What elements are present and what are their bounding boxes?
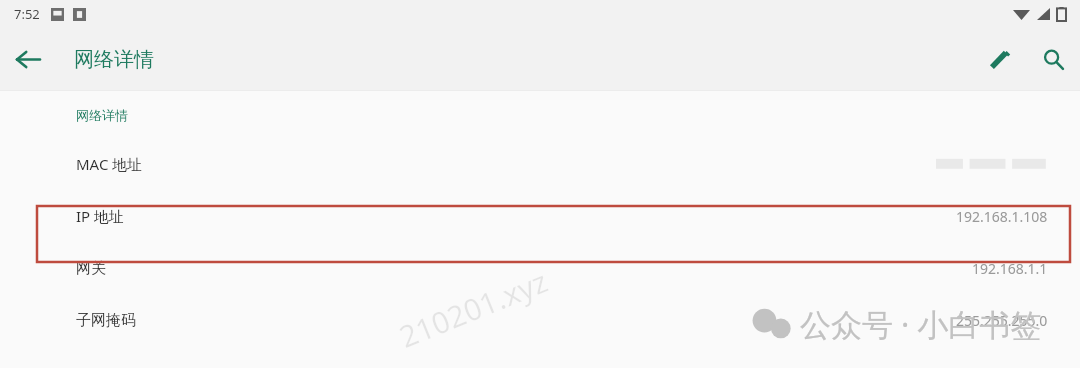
- button[interactable]: Search: [1026, 32, 1080, 86]
- button[interactable]: 子网掩码: [0, 294, 1080, 346]
- staticText: 192.168.1.1: [972, 259, 1048, 278]
- staticText: 网络详情: [74, 47, 154, 72]
- staticText: IP 地址: [76, 206, 125, 226]
- button[interactable]: 网关: [0, 242, 1080, 294]
- button[interactable]: Back: [0, 31, 56, 87]
- staticText: 255.255.255.0: [956, 311, 1048, 330]
- button[interactable]: Edit: [972, 32, 1026, 86]
- staticText: 192.168.1.108: [956, 207, 1048, 226]
- staticText: 公众号 · 小白书签: [800, 303, 1042, 345]
- staticText: MAC 地址: [76, 154, 143, 174]
- button[interactable]: IP 地址: [0, 190, 1080, 242]
- staticText: 7:52: [14, 5, 40, 23]
- staticText: 210201.xyz: [393, 260, 554, 357]
- staticText: 网关: [76, 259, 106, 278]
- button[interactable]: MAC 地址: [0, 138, 1080, 190]
- staticText: 网络详情: [76, 107, 128, 123]
- staticText: 子网掩码: [76, 311, 136, 330]
